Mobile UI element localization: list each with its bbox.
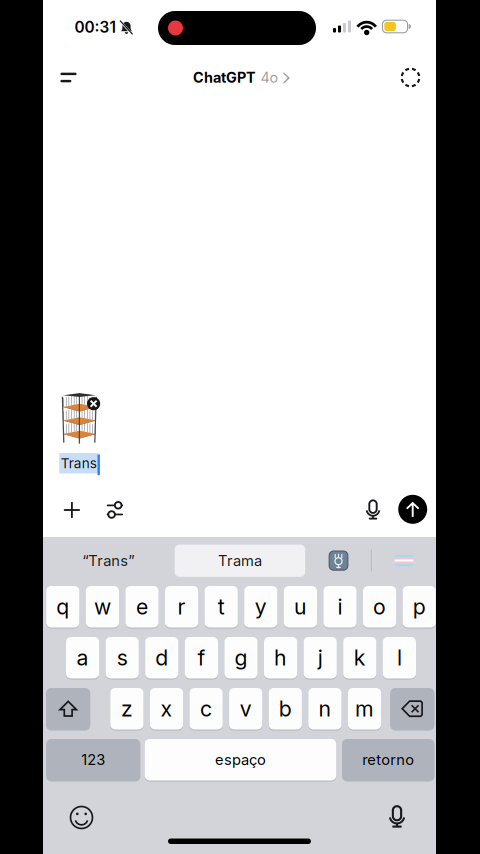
staticText: p	[413, 594, 426, 620]
button[interactable]: f	[185, 636, 218, 679]
staticText: 00:31	[74, 18, 115, 37]
staticText: q	[56, 594, 69, 620]
button[interactable]: h	[264, 636, 297, 679]
button[interactable]: u	[284, 585, 317, 628]
button[interactable]: Transgender flag suggestion	[387, 545, 421, 577]
button[interactable]: espaço	[145, 738, 336, 781]
staticText: m	[355, 696, 374, 722]
button[interactable]: retorno	[342, 738, 434, 781]
staticText: x	[160, 696, 172, 722]
button[interactable]: k	[343, 636, 376, 679]
button[interactable]: Remove attachment	[85, 395, 103, 413]
button[interactable]: y	[244, 585, 277, 628]
button[interactable]: d	[145, 636, 178, 679]
button[interactable]: i	[323, 585, 357, 628]
staticText: b	[279, 696, 292, 722]
staticText: a	[77, 645, 89, 671]
staticText: r	[178, 594, 186, 620]
button[interactable]: ChatGPT	[189, 62, 294, 93]
button[interactable]: Sidebar	[47, 60, 89, 94]
button[interactable]: o	[363, 585, 396, 628]
staticText: Trans	[61, 455, 97, 471]
button[interactable]: “Trans”	[42, 545, 174, 577]
staticText: retorno	[362, 751, 414, 769]
button[interactable]: g	[224, 636, 258, 679]
staticText: v	[240, 696, 252, 722]
staticText: 123	[81, 751, 105, 769]
button[interactable]: 123	[46, 738, 140, 781]
staticText: 4o	[261, 69, 279, 86]
staticText: c	[200, 696, 212, 722]
staticText: f	[197, 645, 205, 671]
button[interactable]: New temporary chat	[389, 60, 431, 94]
staticText: e	[136, 594, 148, 620]
button[interactable]: Dictation	[377, 799, 417, 835]
button[interactable]: x	[150, 687, 183, 730]
staticText: s	[117, 645, 128, 671]
staticText: w	[94, 594, 111, 620]
button[interactable]: r	[165, 585, 198, 628]
staticText: y	[255, 594, 267, 620]
staticText: espaço	[215, 751, 266, 769]
button[interactable]: v	[229, 687, 262, 730]
staticText: h	[274, 645, 287, 671]
button[interactable]: e	[125, 585, 159, 628]
button[interactable]: Send message	[396, 492, 430, 526]
button[interactable]: Delete	[390, 687, 434, 730]
button[interactable]: t	[205, 585, 238, 628]
button[interactable]: z	[110, 687, 143, 730]
staticText: l	[397, 645, 402, 671]
staticText: d	[155, 645, 168, 671]
staticText: n	[318, 696, 331, 722]
button[interactable]: Transgender symbol suggestion	[321, 545, 355, 577]
staticText: u	[294, 594, 307, 620]
staticText: Trama	[218, 552, 262, 569]
staticText: “Trans”	[82, 552, 134, 569]
button[interactable]: Attach	[53, 493, 91, 527]
staticText: z	[121, 696, 133, 722]
button[interactable]: j	[304, 636, 337, 679]
button[interactable]: l	[383, 636, 416, 679]
button[interactable]: Trama	[175, 545, 305, 577]
button[interactable]: a	[66, 636, 99, 679]
staticText: g	[234, 645, 247, 671]
staticText: ChatGPT	[193, 69, 256, 86]
button[interactable]: n	[308, 687, 341, 730]
button[interactable]: m	[348, 687, 381, 730]
staticText: i	[337, 594, 342, 620]
staticText: o	[373, 594, 386, 620]
button[interactable]: p	[403, 585, 436, 628]
button[interactable]: b	[269, 687, 302, 730]
button[interactable]: w	[86, 585, 119, 628]
button[interactable]: Tools	[96, 487, 134, 521]
staticText: t	[218, 594, 225, 620]
button[interactable]: Emoji keyboard	[61, 799, 101, 835]
button[interactable]: q	[46, 585, 79, 628]
staticText: j	[318, 645, 323, 671]
button[interactable]: Dictate	[355, 493, 391, 527]
button[interactable]: c	[189, 687, 223, 730]
button[interactable]: Shift	[46, 687, 90, 730]
button[interactable]: s	[106, 636, 139, 679]
staticText: k	[354, 645, 366, 671]
